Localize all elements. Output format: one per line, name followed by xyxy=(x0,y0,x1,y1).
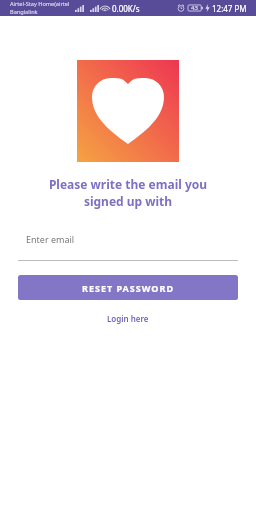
staticText: 43 xyxy=(191,4,198,12)
staticText: Enter email xyxy=(26,233,75,245)
staticText: 12:47 PM xyxy=(212,3,247,14)
button[interactable]: Login here xyxy=(101,310,155,327)
staticText: Airtel-Stay Home(airtel xyxy=(10,0,70,8)
staticText: Login here xyxy=(107,313,149,324)
button[interactable]: Enter email xyxy=(18,228,238,260)
staticText: Please write the email you xyxy=(0,176,256,192)
staticText: 0.00K/s xyxy=(112,3,140,14)
staticText: Banglalink xyxy=(10,8,38,16)
button[interactable]: RESET PASSWORD xyxy=(18,275,238,300)
staticText: signed up with xyxy=(0,193,256,209)
staticText: RESET PASSWORD xyxy=(82,282,174,294)
